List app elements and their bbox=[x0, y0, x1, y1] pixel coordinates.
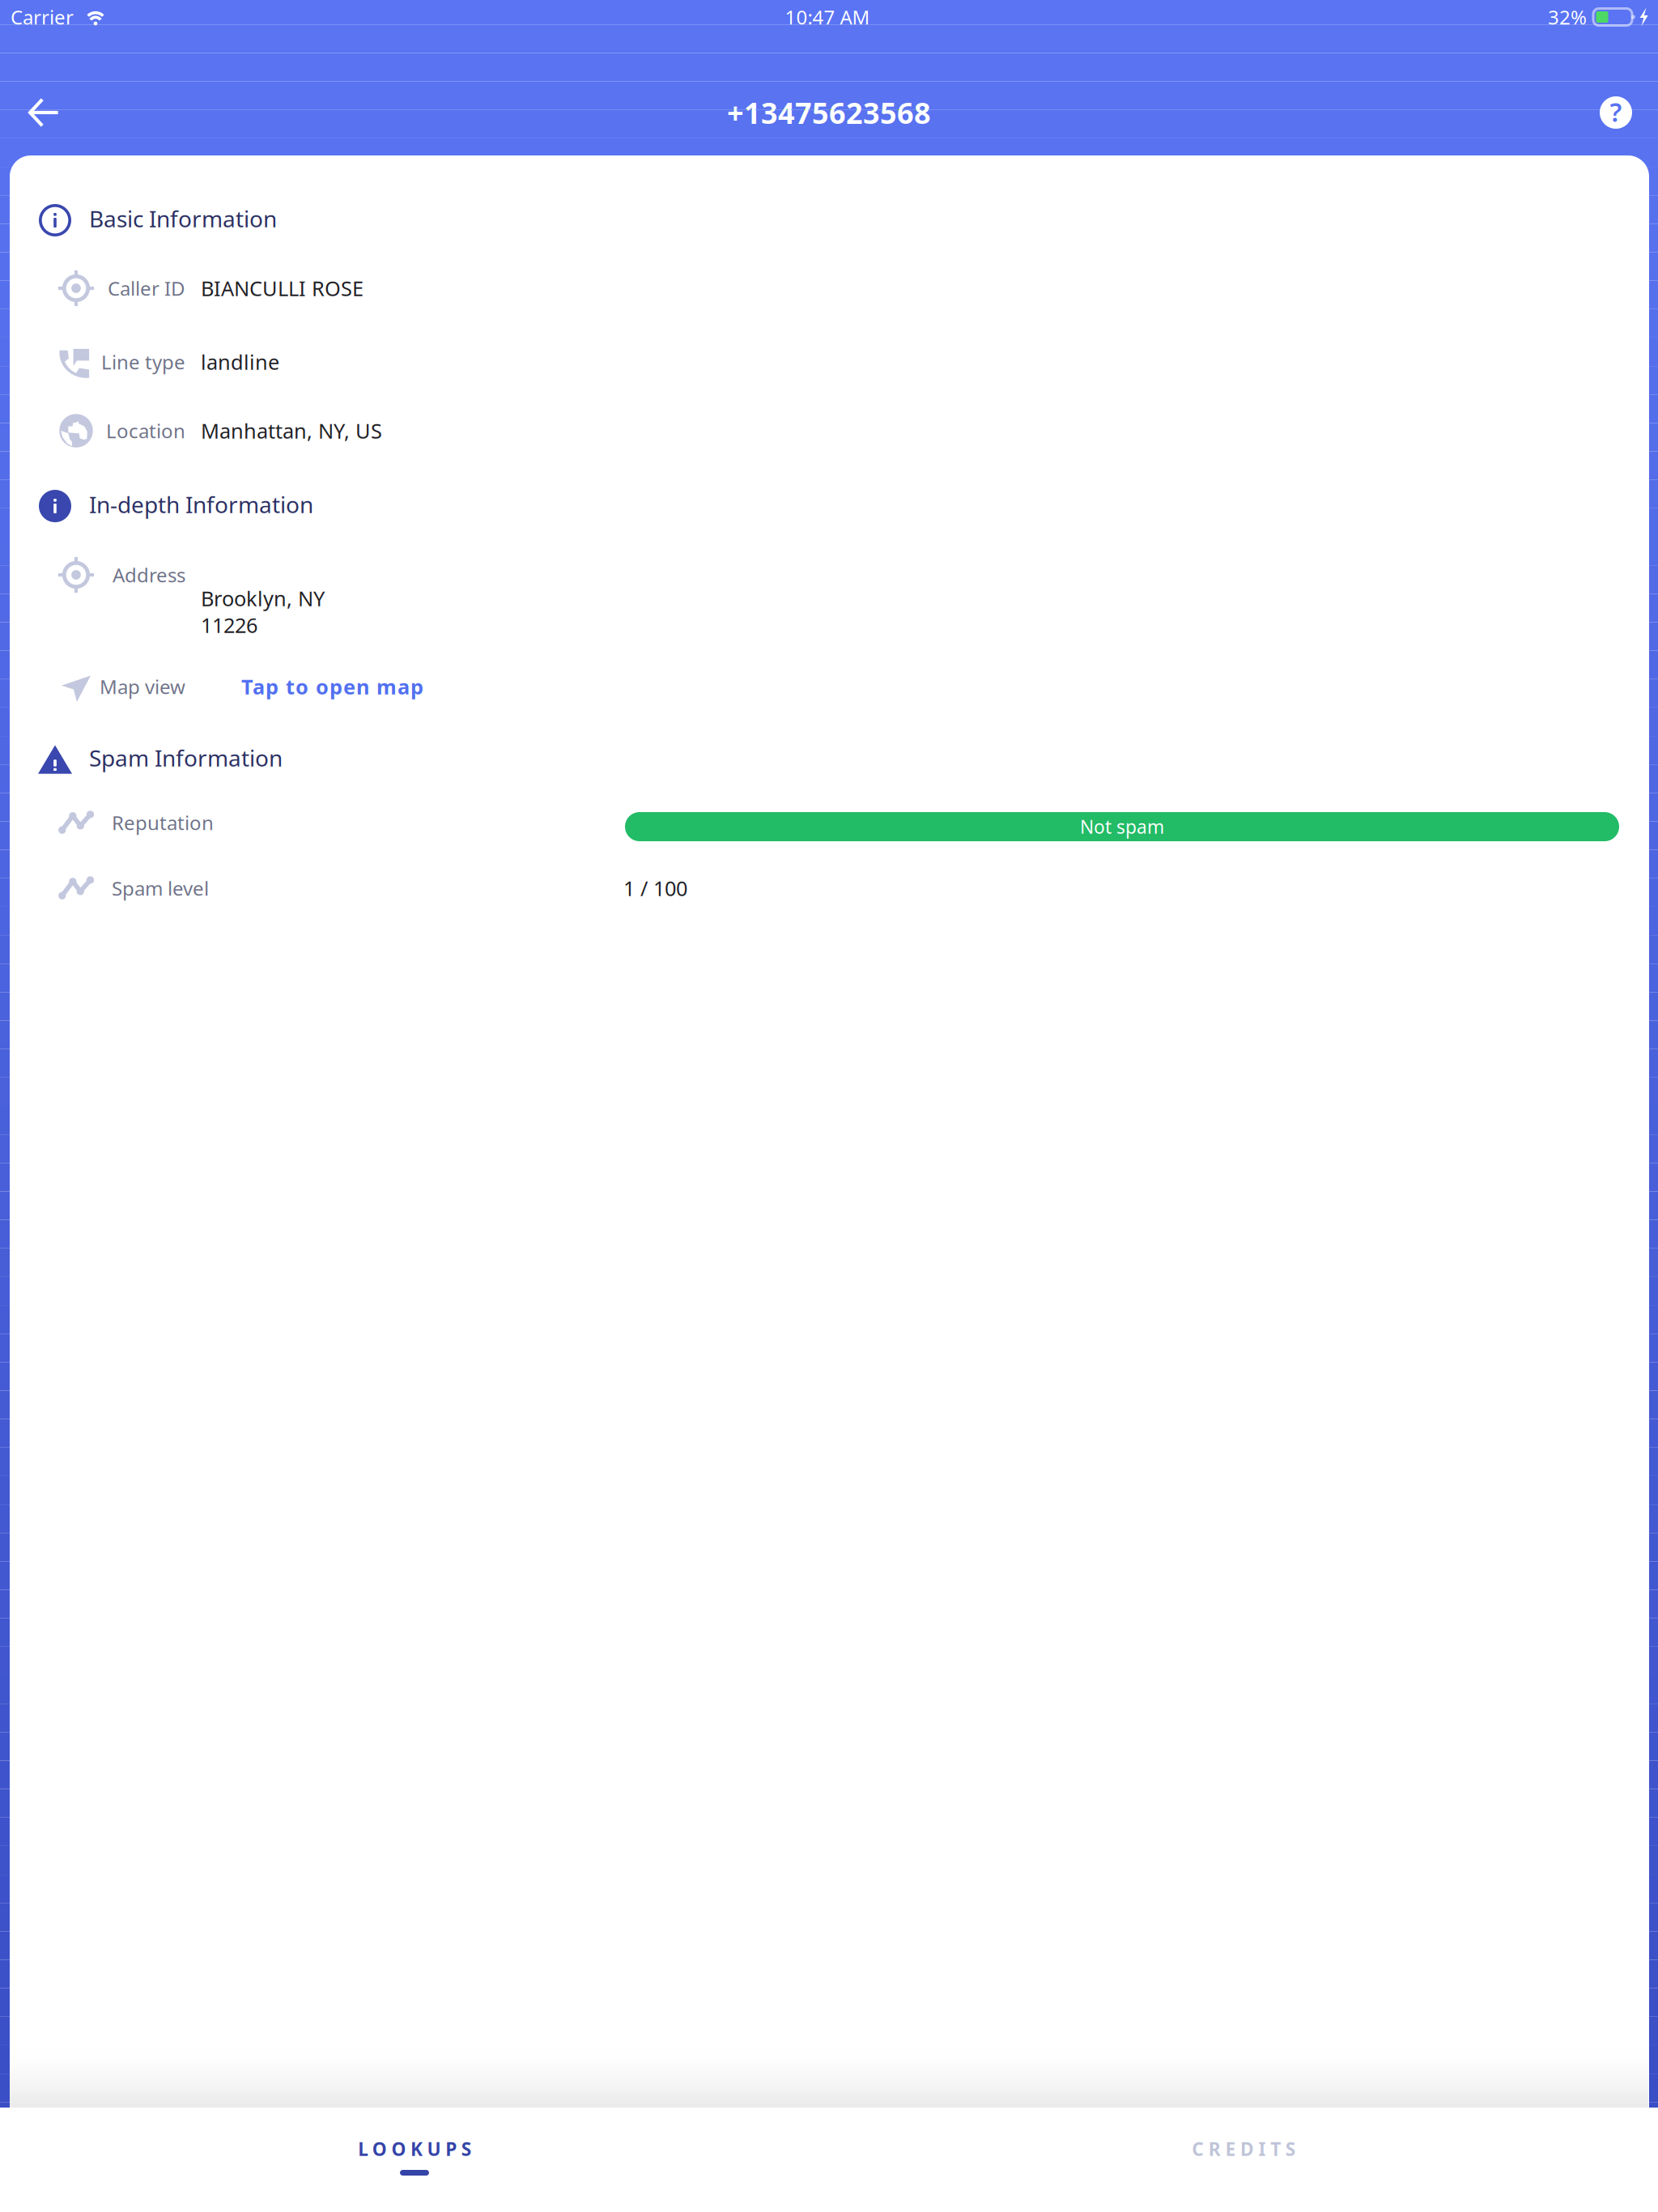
staticText: LOOKUPS bbox=[358, 2137, 471, 2161]
staticText: Address bbox=[113, 562, 185, 588]
staticText: CREDITS bbox=[1192, 2137, 1295, 2161]
staticText: 32% bbox=[1548, 4, 1587, 30]
staticText: Spam level bbox=[112, 875, 209, 901]
staticText: Brooklyn, NY bbox=[201, 585, 325, 612]
staticText: In-depth Information bbox=[89, 489, 313, 519]
button[interactable]: CREDITS bbox=[829, 2108, 1658, 2212]
staticText: 11226 bbox=[201, 611, 257, 639]
staticText: +13475623568 bbox=[727, 93, 931, 132]
staticText: Location bbox=[106, 418, 185, 444]
staticText: Spam Information bbox=[89, 743, 283, 773]
staticText: Tap to open map bbox=[241, 673, 423, 700]
staticText: Line type bbox=[101, 349, 185, 375]
staticText: Carrier bbox=[11, 4, 74, 30]
staticText: ? bbox=[1610, 95, 1622, 129]
staticText: Map view bbox=[100, 674, 185, 700]
staticText: Not spam bbox=[1080, 814, 1164, 839]
staticText: 1 / 100 bbox=[623, 875, 687, 902]
button[interactable]: Help bbox=[1577, 68, 1655, 157]
button[interactable]: LOOKUPS bbox=[0, 2108, 829, 2212]
button[interactable]: Tap to open map bbox=[241, 666, 452, 707]
button[interactable]: Back bbox=[5, 68, 83, 157]
staticText: Basic Information bbox=[89, 204, 277, 234]
staticText: Reputation bbox=[112, 810, 214, 836]
staticText: 10:47 AM bbox=[785, 4, 870, 30]
staticText: Caller ID bbox=[108, 275, 185, 301]
staticText: BIANCULLI ROSE bbox=[201, 275, 363, 302]
staticText: landline bbox=[201, 348, 279, 376]
staticText: Manhattan, NY, US bbox=[201, 417, 382, 444]
